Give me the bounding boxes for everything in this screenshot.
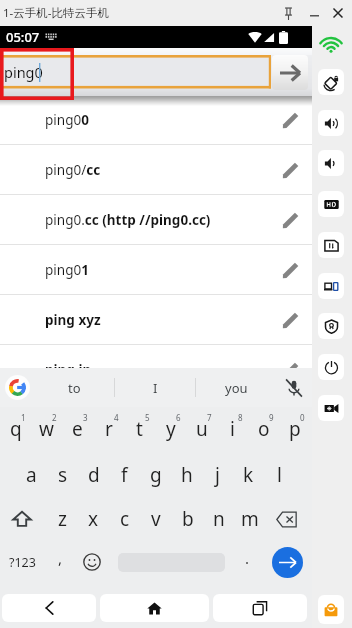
staticText: . xyxy=(245,548,250,568)
button[interactable]: j xyxy=(202,452,233,497)
button[interactable]: Voice input off xyxy=(276,368,312,407)
button[interactable]: Edit suggestion xyxy=(277,357,303,368)
staticText: b xyxy=(182,506,194,532)
button[interactable]: Volume up xyxy=(318,110,344,136)
button[interactable]: 9 xyxy=(248,407,279,452)
button[interactable]: ping0.cc (http //ping0.cc) xyxy=(0,195,312,245)
staticText: d xyxy=(88,462,100,488)
button[interactable]: v xyxy=(140,497,171,541)
button[interactable]: Home xyxy=(100,594,209,622)
button[interactable]: to xyxy=(34,368,114,407)
button[interactable]: x xyxy=(78,497,109,541)
button[interactable]: 2 xyxy=(31,407,62,452)
staticText: I xyxy=(153,379,158,397)
button[interactable]: b xyxy=(172,497,203,541)
button[interactable]: l xyxy=(264,452,295,497)
button[interactable]: a xyxy=(16,452,47,497)
staticText: ping01 xyxy=(45,261,89,279)
button[interactable]: 1 xyxy=(0,407,31,452)
button[interactable]: 7 xyxy=(186,407,217,452)
button[interactable]: Back xyxy=(2,594,96,622)
button[interactable]: ping0 xyxy=(0,48,271,96)
button[interactable]: Root permissions xyxy=(318,313,344,339)
staticText: y xyxy=(166,416,176,442)
button[interactable]: Edit suggestion xyxy=(277,107,303,133)
staticText: l xyxy=(277,462,282,488)
button[interactable]: h xyxy=(171,452,202,497)
staticText: z xyxy=(58,506,67,532)
button[interactable]: Video quality HD xyxy=(318,191,344,217)
button[interactable]: 5 xyxy=(124,407,155,452)
button[interactable]: c xyxy=(109,497,140,541)
staticText: i xyxy=(230,416,235,442)
staticText: 7 xyxy=(207,412,212,423)
staticText: w xyxy=(39,416,54,442)
button[interactable]: n xyxy=(203,497,234,541)
staticText: x xyxy=(88,506,99,532)
button[interactable]: ping0/cc xyxy=(0,145,312,195)
button[interactable]: z xyxy=(47,497,78,541)
button[interactable]: Pin window xyxy=(276,0,300,26)
button[interactable]: 8 xyxy=(217,407,248,452)
staticText: you xyxy=(225,379,248,397)
button[interactable]: 4 xyxy=(93,407,124,452)
button[interactable]: Go xyxy=(272,55,308,90)
button[interactable]: Screen cast xyxy=(318,273,344,299)
button[interactable]: s xyxy=(47,452,78,497)
staticText: ping00 xyxy=(45,111,89,129)
button[interactable]: Enter xyxy=(262,541,312,583)
button[interactable]: Shift xyxy=(0,497,44,541)
button[interactable]: Volume down xyxy=(318,150,344,176)
button[interactable]: File transfer xyxy=(318,232,344,258)
button[interactable]: Space xyxy=(110,541,233,583)
staticText: r xyxy=(105,416,113,442)
button[interactable]: App store xyxy=(318,595,344,624)
staticText: q xyxy=(10,416,22,442)
button[interactable]: ping ip xyxy=(0,345,312,368)
button[interactable]: Emoji xyxy=(76,541,107,583)
staticText: m xyxy=(241,506,259,532)
button[interactable]: Edit suggestion xyxy=(277,307,303,333)
button[interactable]: g xyxy=(140,452,171,497)
button[interactable]: Minimize xyxy=(302,0,326,26)
staticText: u xyxy=(196,416,208,442)
button[interactable]: Power xyxy=(318,354,344,380)
button[interactable]: Backspace xyxy=(266,497,307,541)
staticText: 2 xyxy=(52,412,57,423)
staticText: p xyxy=(289,416,301,442)
staticText: 8 xyxy=(238,412,243,423)
button[interactable]: I xyxy=(115,368,195,407)
button[interactable]: Rotation lock xyxy=(318,69,344,95)
staticText: ping xyz xyxy=(45,311,101,329)
staticText: g xyxy=(150,462,162,488)
button[interactable]: Comma xyxy=(44,541,76,583)
button[interactable]: Edit suggestion xyxy=(277,207,303,233)
button[interactable]: Google xyxy=(0,368,34,407)
staticText: ping ip xyxy=(45,361,91,368)
button[interactable]: Edit suggestion xyxy=(277,257,303,283)
button[interactable]: ping01 xyxy=(0,245,312,295)
staticText: 05:07 xyxy=(6,28,40,46)
button[interactable]: Symbols xyxy=(2,541,42,583)
button[interactable]: k xyxy=(233,452,264,497)
button[interactable]: ping00 xyxy=(0,95,312,145)
button[interactable]: 3 xyxy=(62,407,93,452)
button[interactable]: Screen record xyxy=(318,395,344,421)
button[interactable]: Close xyxy=(326,0,350,26)
button[interactable]: m xyxy=(234,497,265,541)
staticText: f xyxy=(121,462,128,488)
staticText: 1 xyxy=(21,412,26,423)
button[interactable]: f xyxy=(109,452,140,497)
staticText: k xyxy=(243,462,254,488)
button[interactable]: 6 xyxy=(155,407,186,452)
button[interactable]: Period xyxy=(234,541,260,583)
button[interactable]: Edit suggestion xyxy=(277,157,303,183)
button[interactable]: d xyxy=(78,452,109,497)
button[interactable]: ping xyz xyxy=(0,295,312,345)
button[interactable]: you xyxy=(196,368,276,407)
button[interactable]: Recent apps xyxy=(213,594,307,622)
staticText: v xyxy=(151,506,161,532)
staticText: 4 xyxy=(114,412,119,423)
button[interactable]: 0 xyxy=(279,407,310,452)
staticText: , xyxy=(58,548,63,568)
